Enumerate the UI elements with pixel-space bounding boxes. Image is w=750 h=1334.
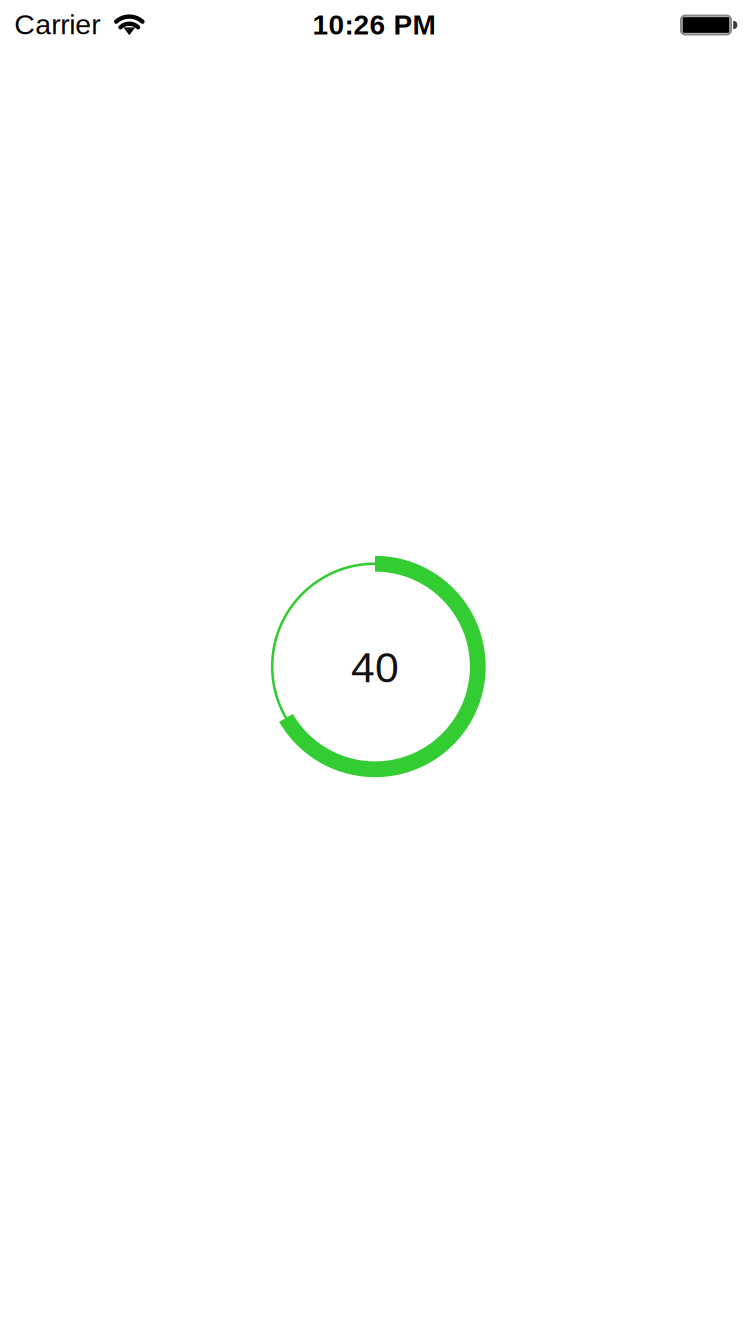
button[interactable]: Timer, 40 seconds remaining bbox=[264, 556, 486, 777]
staticText: 10:26 PM bbox=[312, 9, 435, 40]
staticText: Carrier bbox=[14, 8, 100, 40]
staticText: 40 bbox=[351, 644, 399, 691]
